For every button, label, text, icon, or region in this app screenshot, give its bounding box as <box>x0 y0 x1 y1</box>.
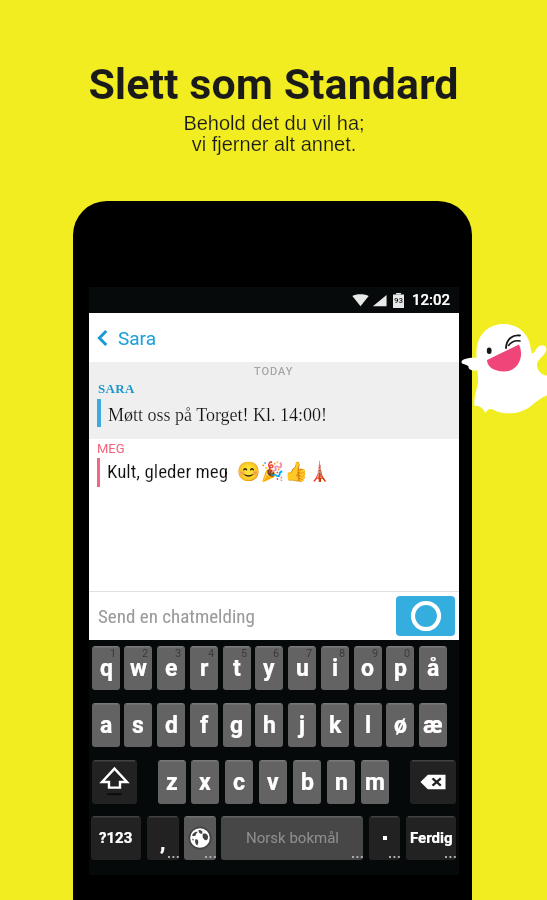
staticText: Slett som Standard <box>88 59 459 109</box>
button[interactable]: Send a snap <box>396 596 455 636</box>
staticText: 0 <box>404 647 411 660</box>
staticText: w <box>130 655 147 682</box>
staticText: Behold det du vil ha; vi fjerner alt ann… <box>183 112 365 155</box>
staticText: p <box>394 655 407 682</box>
button[interactable]: Shift <box>92 760 137 804</box>
staticText: 3 <box>175 647 182 660</box>
staticText: 6 <box>273 647 280 660</box>
staticText: æ <box>423 712 443 739</box>
button[interactable]: s <box>124 703 152 747</box>
staticText: x <box>199 769 211 796</box>
staticText: c <box>233 769 246 796</box>
staticText: Norsk bokmål <box>246 829 339 847</box>
button[interactable]: Ferdig <box>406 816 456 860</box>
staticText: u <box>296 655 309 682</box>
button[interactable]: x <box>191 760 219 804</box>
button[interactable]: k <box>321 703 349 747</box>
button[interactable]: h <box>255 703 283 747</box>
staticText: f <box>200 712 209 739</box>
button[interactable]: ø <box>386 703 414 747</box>
staticText: b <box>301 769 314 796</box>
button[interactable]: ?123 <box>91 816 141 860</box>
button[interactable]: y <box>255 646 283 690</box>
staticText: SARA <box>98 381 135 395</box>
button[interactable]: b <box>293 760 321 804</box>
staticText: ø <box>394 712 407 739</box>
staticText: s <box>132 712 144 739</box>
button[interactable]: o <box>354 646 382 690</box>
button[interactable]: j <box>288 703 316 747</box>
button[interactable]: t <box>223 646 251 690</box>
button[interactable]: i <box>321 646 349 690</box>
staticText: z <box>166 769 178 796</box>
button[interactable]: g <box>223 703 251 747</box>
button[interactable]: Delete <box>410 760 456 804</box>
button[interactable]: w <box>124 646 152 690</box>
staticText: 8 <box>339 647 346 660</box>
staticText: g <box>230 712 244 739</box>
button[interactable]: , <box>147 816 179 860</box>
button[interactable]: a <box>92 703 120 747</box>
staticText: i <box>332 655 339 682</box>
other: Back <box>98 330 107 346</box>
button[interactable]: m <box>361 760 389 804</box>
button[interactable]: l <box>354 703 382 747</box>
button[interactable]: u <box>288 646 316 690</box>
staticText: q <box>100 655 113 682</box>
button[interactable]: Norsk bokmål <box>221 816 363 860</box>
button[interactable]: n <box>327 760 355 804</box>
staticText: Send en chatmelding <box>98 605 255 627</box>
staticText: y <box>263 655 275 682</box>
button[interactable]: f <box>190 703 218 747</box>
staticText: t <box>233 655 241 682</box>
staticText: Møtt oss på Torget! Kl. 14:00! <box>108 405 328 425</box>
button[interactable]: Back <box>89 313 459 362</box>
staticText: Sara <box>118 327 157 349</box>
button[interactable]: p <box>386 646 414 690</box>
staticText: 12:02 <box>412 291 451 309</box>
staticText: TODAY <box>254 365 294 378</box>
staticText: å <box>427 655 440 682</box>
button[interactable]: v <box>259 760 287 804</box>
staticText: l <box>365 712 372 739</box>
button[interactable]: æ <box>419 703 447 747</box>
button[interactable]: q <box>92 646 120 690</box>
staticText: k <box>329 712 342 739</box>
staticText: Ferdig <box>410 829 453 847</box>
button[interactable]: e <box>157 646 185 690</box>
button[interactable]: z <box>158 760 186 804</box>
staticText: 1 <box>110 647 117 660</box>
staticText: m <box>365 769 385 796</box>
staticText: r <box>200 655 209 682</box>
button[interactable]: c <box>225 760 253 804</box>
staticText: , <box>160 830 166 856</box>
staticText: v <box>267 769 279 796</box>
staticText: 7 <box>306 647 313 660</box>
staticText: e <box>165 655 178 682</box>
staticText: n <box>335 769 348 796</box>
button[interactable]: r <box>190 646 218 690</box>
staticText: o <box>361 655 375 682</box>
staticText: Kult, gleder meg 😊🎉👍🗼 <box>107 460 332 482</box>
staticText: 2 <box>142 647 149 660</box>
staticText: d <box>165 712 178 739</box>
staticText: h <box>263 712 276 739</box>
staticText: a <box>100 712 113 739</box>
staticText: 5 <box>241 647 248 660</box>
staticText: 4 <box>208 647 215 660</box>
staticText: 9 <box>372 647 379 660</box>
button[interactable]: å <box>419 646 447 690</box>
staticText: j <box>299 712 305 739</box>
staticText: MEG <box>97 441 125 456</box>
button[interactable]: d <box>157 703 185 747</box>
button[interactable]: Change language <box>184 816 216 860</box>
staticText: 93 <box>394 296 404 305</box>
button[interactable] <box>369 816 400 860</box>
staticText: ?123 <box>99 829 133 847</box>
